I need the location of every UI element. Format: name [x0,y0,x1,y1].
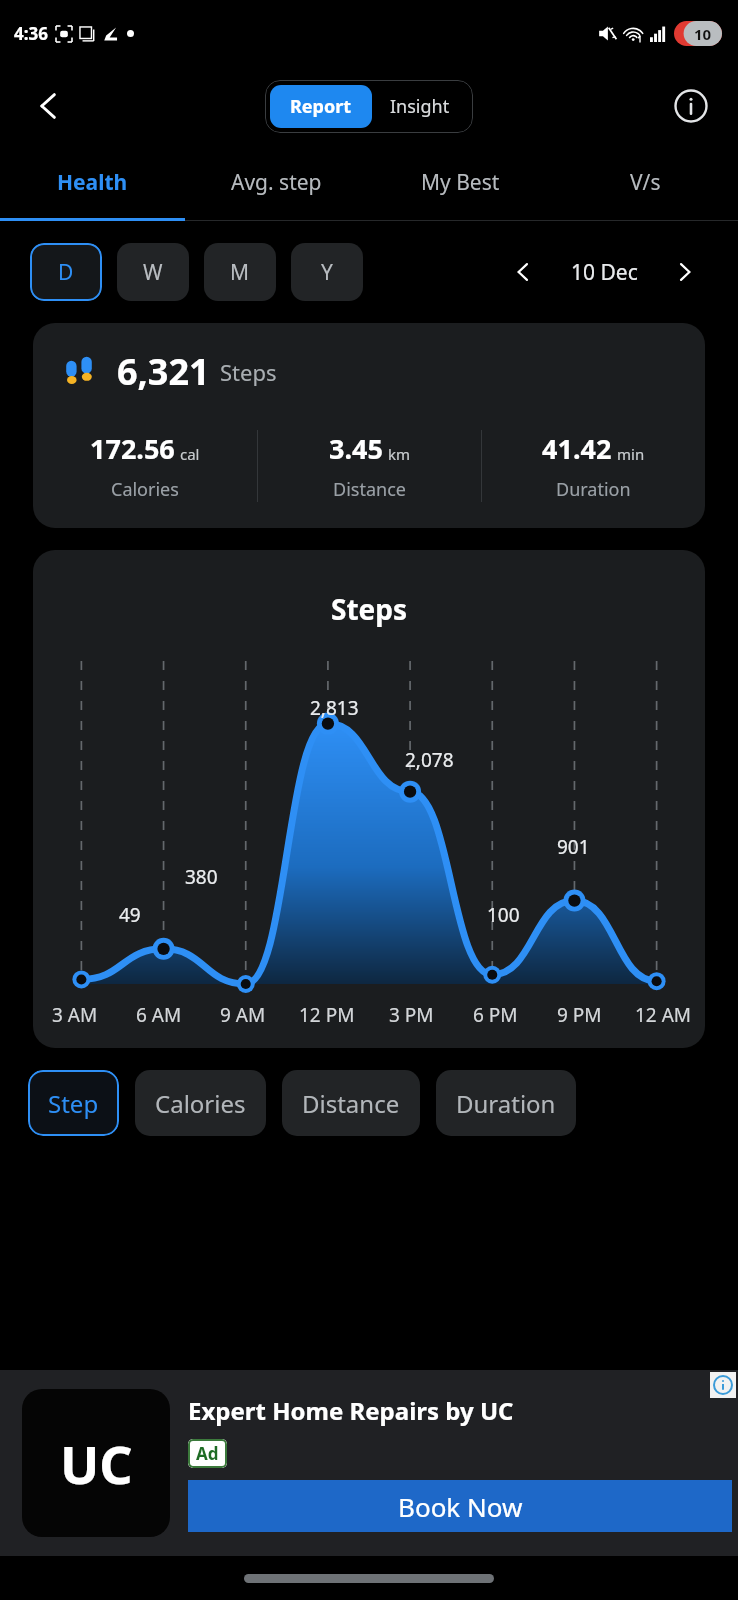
staticText: Step [48,1087,99,1120]
staticText: 2,813 [310,695,359,721]
staticText: D [58,258,74,287]
staticText: 49 [119,902,141,928]
staticText: Distance [302,1087,400,1120]
staticText: km [388,444,411,464]
staticText: 9 AM [220,1002,266,1028]
staticText: 6 AM [136,1002,182,1028]
staticText: 6,321 [117,347,210,396]
staticText: Calories [111,477,179,502]
staticText: 3.45 [329,430,383,467]
staticText: 4:36 [14,22,48,45]
staticText: 3 AM [52,1002,98,1028]
staticText: Expert Home Repairs by UC [188,1394,514,1427]
staticText: 9 PM [557,1002,602,1028]
button[interactable]: Ad info [710,1372,736,1398]
button[interactable]: Calories [135,1070,266,1136]
button[interactable]: Next day [662,249,708,295]
button[interactable]: Avg. step [184,146,368,218]
staticText: M [230,258,250,287]
staticText: 2,078 [405,747,454,773]
button[interactable]: Y [291,243,363,301]
staticText: Duration [456,1087,556,1120]
staticText: 41.42 [542,430,612,467]
staticText: Insight [390,94,450,119]
button[interactable]: Book Now [188,1480,732,1532]
staticText: My Best [421,168,500,197]
button[interactable]: Report [270,85,372,128]
button[interactable]: Distance [282,1070,420,1136]
staticText: 901 [557,834,590,860]
staticText: Duration [556,477,631,502]
staticText: Steps [220,357,277,387]
button[interactable]: Health [0,146,184,218]
staticText: cal [180,444,200,464]
staticText: 6 PM [473,1002,518,1028]
button[interactable]: W [117,243,189,301]
staticText: min [617,444,645,464]
button[interactable]: D [30,243,102,301]
button[interactable]: My Best [368,146,553,218]
staticText: 380 [185,864,218,890]
staticText: Steps [33,590,705,628]
staticText: UC [60,1428,133,1499]
button[interactable]: 10 Dec [546,258,662,287]
staticText: W [143,258,163,287]
button[interactable]: Back [22,79,76,133]
staticText: 3 PM [389,1002,434,1028]
staticText: 10 Dec [571,258,638,287]
staticText: Distance [333,477,406,502]
staticText: 172.56 [90,430,175,467]
staticText: Report [290,94,352,119]
button[interactable]: M [204,243,276,301]
staticText: Book Now [398,1489,523,1524]
button[interactable]: Information [666,81,716,131]
staticText: 10 [694,24,712,44]
button[interactable]: Steps [33,550,705,1048]
button[interactable]: 6,321 [33,323,705,528]
staticText: Avg. step [231,168,322,197]
button[interactable]: Step [28,1070,119,1136]
staticText: 12 PM [299,1002,355,1028]
button[interactable]: Duration [436,1070,576,1136]
button[interactable]: Insight [372,85,468,128]
staticText: Health [57,168,128,197]
staticText: 12 AM [635,1002,692,1028]
staticText: 100 [487,902,520,928]
button[interactable]: UC [22,1389,170,1537]
staticText: Calories [155,1087,246,1120]
button[interactable]: Previous day [500,249,546,295]
staticText: V/s [630,168,661,197]
staticText: Y [321,258,333,287]
button[interactable]: V/s [553,146,738,218]
staticText: Ad [196,1442,219,1465]
